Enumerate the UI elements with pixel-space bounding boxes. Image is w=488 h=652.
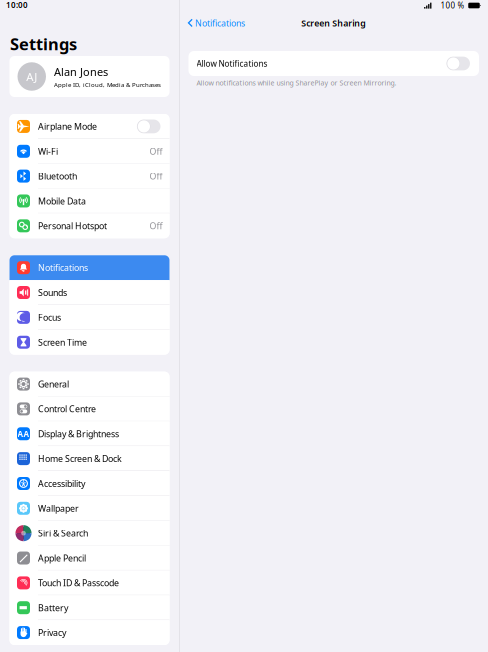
staticText: Control Centre <box>38 403 96 415</box>
staticText: Focus <box>38 311 61 323</box>
staticText: AJ <box>26 69 37 84</box>
staticText: Allow Notifications <box>196 58 267 69</box>
staticText: Home Screen & Dock <box>38 453 122 465</box>
button[interactable]: AA <box>9 421 169 446</box>
staticText: 100 % <box>440 0 464 11</box>
staticText: Display & Brightness <box>38 428 119 440</box>
staticText: Allow notifications while using SharePla… <box>196 78 396 87</box>
button[interactable]: Battery <box>9 595 169 620</box>
button[interactable]: Touch ID & Passcode <box>9 570 169 595</box>
staticText: Mobile Data <box>38 195 86 207</box>
button[interactable]: Wi-Fi <box>9 139 169 164</box>
staticText: Off <box>149 170 162 182</box>
button[interactable]: Allow Notifications <box>188 51 479 76</box>
staticText: Screen Sharing <box>301 17 366 29</box>
button[interactable]: General <box>9 372 169 396</box>
staticText: Airplane Mode <box>38 120 97 132</box>
staticText: Apple Pencil <box>38 552 86 564</box>
staticText: AA <box>17 428 29 439</box>
staticText: Notifications <box>195 17 245 29</box>
button[interactable]: Focus <box>9 305 169 330</box>
button[interactable]: Accessibility <box>9 471 169 496</box>
button[interactable]: Mobile Data <box>9 189 169 213</box>
button[interactable]: Personal Hotspot <box>9 213 169 238</box>
button[interactable]: Siri & Search <box>9 521 169 546</box>
staticText: Wallpaper <box>38 502 79 514</box>
button[interactable]: Airplane Mode <box>9 114 169 139</box>
staticText: Settings <box>10 33 77 55</box>
button[interactable]: Screen Time <box>9 330 169 355</box>
button[interactable]: Bluetooth <box>9 164 169 189</box>
staticText: Touch ID & Passcode <box>38 577 119 589</box>
button[interactable]: Control Centre <box>9 396 169 421</box>
button[interactable]: Sounds <box>9 280 169 305</box>
staticText: Privacy <box>38 627 66 639</box>
staticText: Sounds <box>38 286 67 298</box>
button[interactable]: Apple Pencil <box>9 546 169 570</box>
staticText: General <box>38 378 69 390</box>
button[interactable]: Wallpaper <box>9 496 169 521</box>
button[interactable]: AJ <box>9 56 169 97</box>
staticText: Screen Time <box>38 336 87 348</box>
button[interactable]: Notifications <box>9 255 169 280</box>
staticText: Personal Hotspot <box>38 220 107 232</box>
staticText: Bluetooth <box>38 170 77 182</box>
staticText: Off <box>149 145 162 157</box>
staticText: Notifications <box>38 262 88 274</box>
staticText: Off <box>149 220 162 232</box>
staticText: Alan Jones <box>54 64 108 79</box>
staticText: Siri & Search <box>38 527 88 539</box>
staticText: 10:00 <box>6 0 28 10</box>
staticText: Wi-Fi <box>38 145 58 157</box>
button[interactable]: Privacy <box>9 620 169 645</box>
button[interactable]: Home Screen & Dock <box>9 446 169 471</box>
staticText: Battery <box>38 602 68 614</box>
staticText: Accessibility <box>38 477 85 489</box>
staticText: Apple ID, iCloud, Media & Purchases <box>54 81 161 89</box>
button[interactable]: Notifications <box>179 12 245 34</box>
